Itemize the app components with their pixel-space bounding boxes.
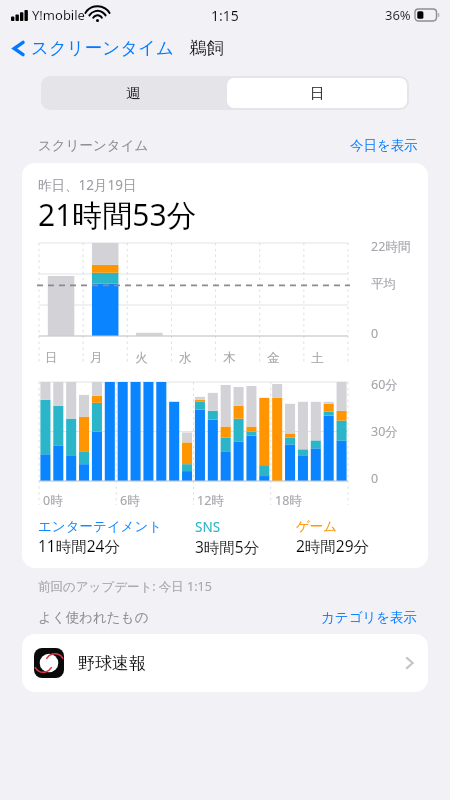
staticText: 月 [90, 350, 103, 366]
staticText: 1:15 [211, 6, 239, 25]
button[interactable]: カテゴリを表示 [321, 609, 418, 626]
staticText: スクリーンタイム [31, 37, 174, 59]
button[interactable]: 日 [227, 78, 407, 108]
staticText: よく使われたもの [38, 609, 149, 626]
staticText: エンターテイメント [38, 518, 163, 535]
staticText: 11時間24分 [38, 535, 120, 556]
staticText: 21時間53分 [38, 194, 197, 235]
staticText: 18時 [275, 492, 302, 509]
button[interactable]: 今日を表示 [350, 137, 418, 154]
staticText: 3時間5分 [195, 536, 260, 557]
staticText: 週 [126, 84, 141, 102]
other: 戻る [12, 38, 25, 59]
staticText: 昨日、12月19日 [38, 176, 137, 194]
staticText: 火 [135, 350, 148, 366]
button[interactable]: 週 [41, 76, 225, 110]
staticText: 60分 [371, 376, 398, 393]
staticText: 2時間29分 [296, 535, 370, 556]
staticText: カテゴリを表示 [321, 609, 418, 626]
staticText: 木 [223, 350, 236, 366]
button[interactable]: 戻る [12, 37, 178, 59]
staticText: 金 [267, 350, 280, 366]
staticText: SNS [195, 518, 221, 536]
staticText: 前回のアップデート: 今日 1:15 [38, 578, 212, 595]
staticText: 日 [310, 84, 325, 102]
staticText: 12時 [197, 492, 224, 509]
staticText: ゲーム [296, 518, 338, 535]
staticText: スクリーンタイム [38, 137, 149, 154]
staticText: 22時間 [371, 238, 411, 255]
staticText: 30分 [371, 423, 398, 440]
staticText: Y!mobile [32, 6, 85, 24]
staticText: 6時 [120, 492, 140, 509]
button[interactable]: 野球速報 [22, 634, 428, 692]
staticText: 0 [371, 325, 379, 342]
staticText: 土 [311, 350, 324, 366]
staticText: 鵜飼 [189, 37, 224, 59]
staticText: 0時 [43, 492, 63, 509]
staticText: 0 [371, 470, 379, 487]
staticText: 平均 [371, 276, 396, 292]
staticText: 日 [45, 350, 58, 366]
staticText: 36% [385, 6, 411, 24]
staticText: 水 [179, 350, 192, 366]
staticText: 今日を表示 [350, 137, 418, 154]
staticText: 野球速報 [78, 653, 146, 674]
